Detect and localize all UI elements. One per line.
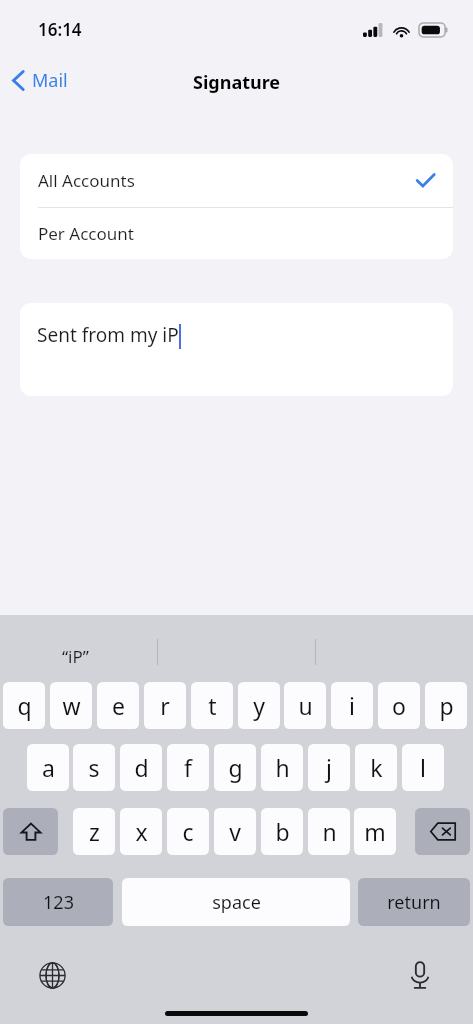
staticText: d: [134, 752, 149, 783]
button[interactable]: x: [120, 808, 162, 855]
staticText: e: [112, 690, 125, 721]
button[interactable]: s: [73, 744, 115, 791]
button[interactable]: z: [73, 808, 115, 855]
staticText: y: [253, 690, 265, 721]
button[interactable]: a: [27, 744, 69, 791]
button[interactable]: o: [378, 682, 420, 729]
staticText: z: [89, 816, 100, 847]
staticText: x: [135, 816, 148, 847]
staticText: p: [439, 690, 454, 721]
staticText: m: [364, 816, 386, 847]
staticText: t: [208, 690, 217, 721]
button[interactable]: w: [50, 682, 92, 729]
button[interactable]: b: [261, 808, 303, 855]
staticText: u: [298, 690, 313, 721]
button[interactable]: Mail: [6, 62, 74, 99]
staticText: c: [182, 816, 194, 847]
staticText: Mail: [32, 68, 68, 93]
staticText: i: [349, 690, 355, 721]
button[interactable]: return: [358, 878, 470, 926]
staticText: 123: [43, 890, 74, 915]
staticText: space: [212, 890, 261, 915]
button[interactable]: “iP”: [58, 645, 93, 668]
button[interactable]: g: [214, 744, 256, 791]
button[interactable]: y: [238, 682, 280, 729]
button[interactable]: Backspace: [415, 808, 470, 855]
button[interactable]: Dictate: [400, 955, 440, 995]
staticText: All Accounts: [38, 169, 135, 192]
staticText: b: [275, 816, 290, 847]
staticText: v: [229, 816, 241, 847]
button[interactable]: 123: [3, 878, 113, 926]
staticText: s: [88, 752, 100, 783]
button[interactable]: e: [97, 682, 139, 729]
button[interactable]: f: [167, 744, 209, 791]
staticText: w: [62, 690, 81, 721]
staticText: f: [184, 752, 192, 783]
staticText: 16:14: [38, 18, 82, 41]
button[interactable]: Per Account: [20, 208, 453, 259]
button[interactable]: space: [122, 878, 350, 926]
staticText: g: [228, 752, 243, 783]
button[interactable]: t: [191, 682, 233, 729]
button[interactable]: l: [402, 744, 444, 791]
button[interactable]: d: [120, 744, 162, 791]
button[interactable]: r: [144, 682, 186, 729]
button[interactable]: m: [354, 808, 396, 855]
button[interactable]: i: [331, 682, 373, 729]
button[interactable]: h: [261, 744, 303, 791]
staticText: Signature: [193, 70, 281, 95]
staticText: o: [392, 690, 406, 721]
staticText: q: [17, 690, 32, 721]
button[interactable]: Change keyboard language: [32, 955, 72, 995]
staticText: return: [387, 890, 441, 915]
staticText: r: [160, 690, 170, 721]
button[interactable]: All Accounts: [20, 154, 453, 207]
button[interactable]: u: [284, 682, 326, 729]
button[interactable]: c: [167, 808, 209, 855]
button[interactable]: Sent from my iP: [20, 303, 453, 396]
button[interactable]: q: [3, 682, 45, 729]
button[interactable]: j: [308, 744, 350, 791]
staticText: l: [420, 752, 426, 783]
staticText: a: [42, 752, 55, 783]
button[interactable]: Shift: [3, 808, 58, 855]
button[interactable]: n: [308, 808, 350, 855]
staticText: k: [370, 752, 383, 783]
staticText: Sent from my iP: [37, 322, 179, 348]
button[interactable]: p: [425, 682, 467, 729]
staticText: n: [322, 816, 337, 847]
staticText: h: [275, 752, 290, 783]
staticText: Per Account: [38, 222, 134, 245]
button[interactable]: k: [355, 744, 397, 791]
button[interactable]: v: [214, 808, 256, 855]
staticText: j: [326, 752, 332, 783]
